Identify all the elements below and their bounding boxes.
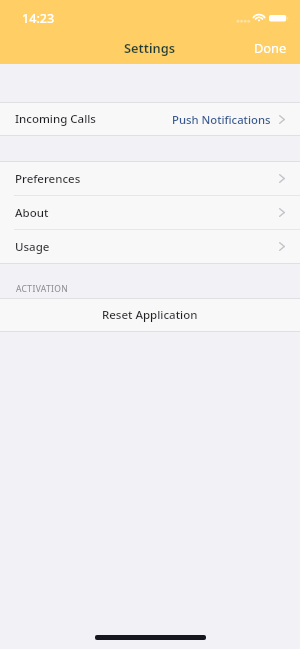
button[interactable]: Reset Application xyxy=(0,299,300,331)
button[interactable]: Usage xyxy=(0,230,300,263)
staticText: ACTIVATION xyxy=(16,283,69,295)
button[interactable]: Incoming Calls xyxy=(0,103,300,135)
staticText: Done xyxy=(254,39,287,56)
other: Open xyxy=(279,115,285,124)
other: Open xyxy=(279,208,285,217)
staticText: About xyxy=(15,205,49,221)
other: Open xyxy=(279,242,285,251)
button[interactable]: Preferences xyxy=(0,162,300,195)
other: Open xyxy=(279,174,285,183)
button[interactable]: About xyxy=(0,196,300,229)
button[interactable]: Done xyxy=(240,31,300,64)
staticText: Preferences xyxy=(15,171,81,187)
staticText: Incoming Calls xyxy=(15,111,96,127)
staticText: 14:23 xyxy=(22,10,55,27)
staticText: Settings xyxy=(124,39,176,56)
staticText: Push Notifications xyxy=(172,112,271,127)
staticText: Usage xyxy=(15,239,50,255)
staticText: Reset Application xyxy=(102,307,198,323)
